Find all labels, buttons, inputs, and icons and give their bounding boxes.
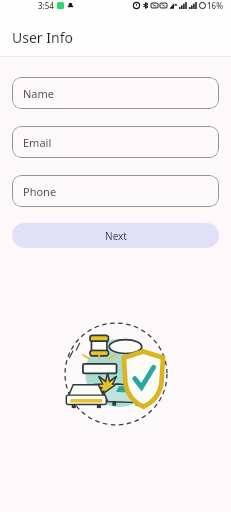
staticText: Email [23,135,52,150]
staticText: Next [105,229,127,243]
button[interactable]: Next [12,223,219,248]
staticText: Name [23,86,55,101]
staticText: Phone [23,184,57,199]
staticText: 16% [207,0,223,11]
button[interactable]: Name [12,77,219,109]
button[interactable]: Email [12,126,219,158]
button[interactable]: Phone [12,175,219,207]
staticText: 3:54 [38,0,54,11]
staticText: User Info [12,28,73,47]
